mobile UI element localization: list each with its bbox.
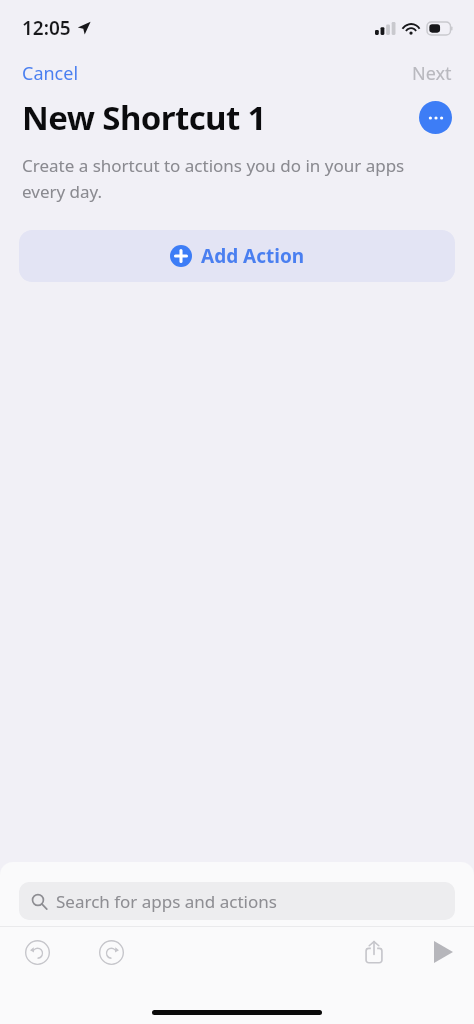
button[interactable]: Share [336, 927, 412, 977]
staticText: New Shortcut 1 [22, 95, 266, 140]
button[interactable]: Undo [0, 927, 74, 977]
button[interactable]: Next [390, 56, 474, 90]
button[interactable]: More options [419, 101, 452, 134]
button[interactable]: Redo [74, 927, 148, 977]
button[interactable]: Cancel [0, 56, 101, 90]
staticText: Search for apps and actions [56, 890, 277, 913]
button[interactable]: Add Action [19, 230, 455, 282]
button[interactable]: Run shortcut [412, 927, 474, 977]
button[interactable]: Search for apps and actions [19, 882, 455, 920]
staticText: Create a shortcut to actions you do in y… [22, 154, 432, 203]
staticText: 12:05 [22, 15, 71, 41]
staticText: Next [412, 61, 452, 85]
staticText: Add Action [201, 243, 305, 269]
staticText: Cancel [22, 61, 79, 85]
